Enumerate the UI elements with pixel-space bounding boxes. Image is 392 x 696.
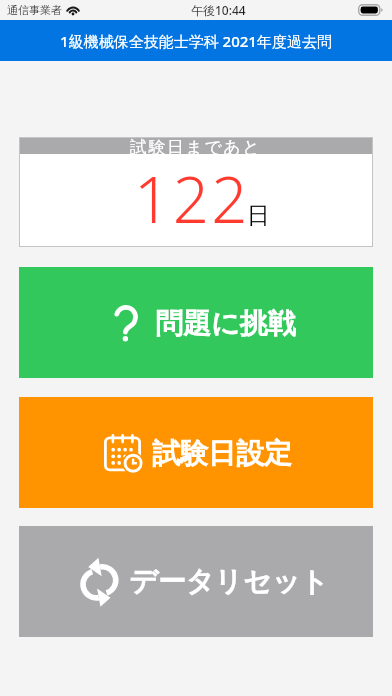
staticText: 試験日まであと bbox=[130, 137, 262, 154]
button[interactable]: Set exam date bbox=[19, 397, 373, 508]
staticText: 問題に挑戦 bbox=[155, 306, 296, 341]
staticText: 試験日設定 bbox=[152, 436, 292, 471]
staticText: 午後10:44 bbox=[191, 2, 246, 18]
button[interactable]: Reset data bbox=[19, 526, 373, 637]
staticText: 日 bbox=[247, 201, 270, 230]
staticText: 通信事業者 bbox=[7, 3, 62, 17]
staticText: 122 bbox=[134, 155, 250, 241]
staticText: データリセット bbox=[129, 564, 329, 599]
button[interactable]: Take quiz bbox=[19, 267, 373, 378]
staticText: 1級機械保全技能士学科 2021年度過去問 bbox=[60, 31, 332, 51]
